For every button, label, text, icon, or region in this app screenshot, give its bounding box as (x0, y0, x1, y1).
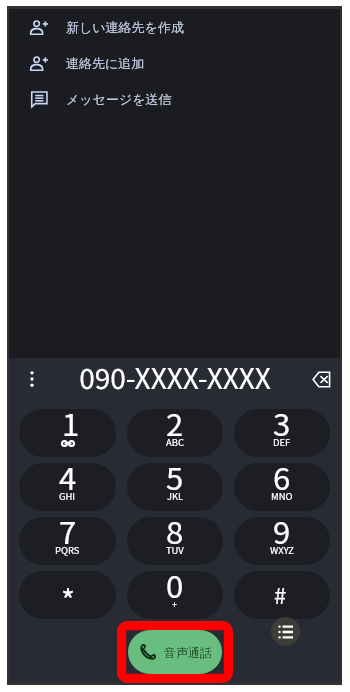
staticText: GHI (59, 489, 76, 503)
staticText: + (172, 597, 178, 611)
button[interactable]: Backspace (301, 359, 341, 399)
staticText: 0 (166, 571, 184, 607)
staticText: JKL (167, 489, 184, 503)
button[interactable]: # (234, 571, 330, 619)
staticText: 音声通話 (164, 645, 212, 660)
button[interactable]: 9 (234, 517, 330, 565)
staticText: 8 (166, 517, 184, 553)
button[interactable]: 7 (19, 517, 116, 565)
staticText: * (61, 577, 76, 619)
button[interactable]: 0 (127, 571, 223, 619)
staticText: WXYZ (270, 543, 294, 557)
staticText: 7 (59, 517, 77, 553)
staticText: 連絡先に追加 (66, 55, 145, 71)
staticText: 4 (59, 463, 77, 499)
staticText: TUV (166, 543, 184, 557)
button[interactable]: 連絡先に追加 (9, 45, 340, 81)
button[interactable]: 6 (234, 463, 330, 511)
staticText: 1 (62, 409, 80, 445)
button[interactable]: Call log (271, 617, 300, 646)
button[interactable]: 音声通話 (128, 630, 222, 674)
staticText: メッセージを送信 (66, 91, 172, 107)
button[interactable]: メッセージを送信 (9, 81, 340, 117)
staticText: ABC (166, 435, 184, 449)
staticText: # (274, 578, 287, 610)
staticText: 新しい連絡先を作成 (66, 19, 184, 35)
button[interactable]: 3 (234, 409, 330, 457)
button[interactable]: * (19, 571, 116, 619)
button[interactable]: 2 (127, 409, 223, 457)
button[interactable]: More options (12, 359, 52, 399)
staticText: 9 (273, 517, 291, 553)
staticText: 090-XXXX-XXXX (79, 357, 271, 398)
button[interactable]: 4 (19, 463, 116, 511)
staticText: PQRS (55, 543, 80, 557)
staticText: MNO (271, 489, 293, 503)
button[interactable]: 1 (19, 409, 116, 457)
staticText: 5 (166, 463, 184, 499)
button[interactable]: 新しい連絡先を作成 (9, 9, 340, 45)
button[interactable]: 5 (127, 463, 223, 511)
staticText: 3 (273, 409, 291, 445)
staticText: 2 (166, 409, 184, 445)
staticText: 6 (273, 463, 291, 499)
button[interactable]: 8 (127, 517, 223, 565)
staticText: DEF (273, 435, 291, 449)
